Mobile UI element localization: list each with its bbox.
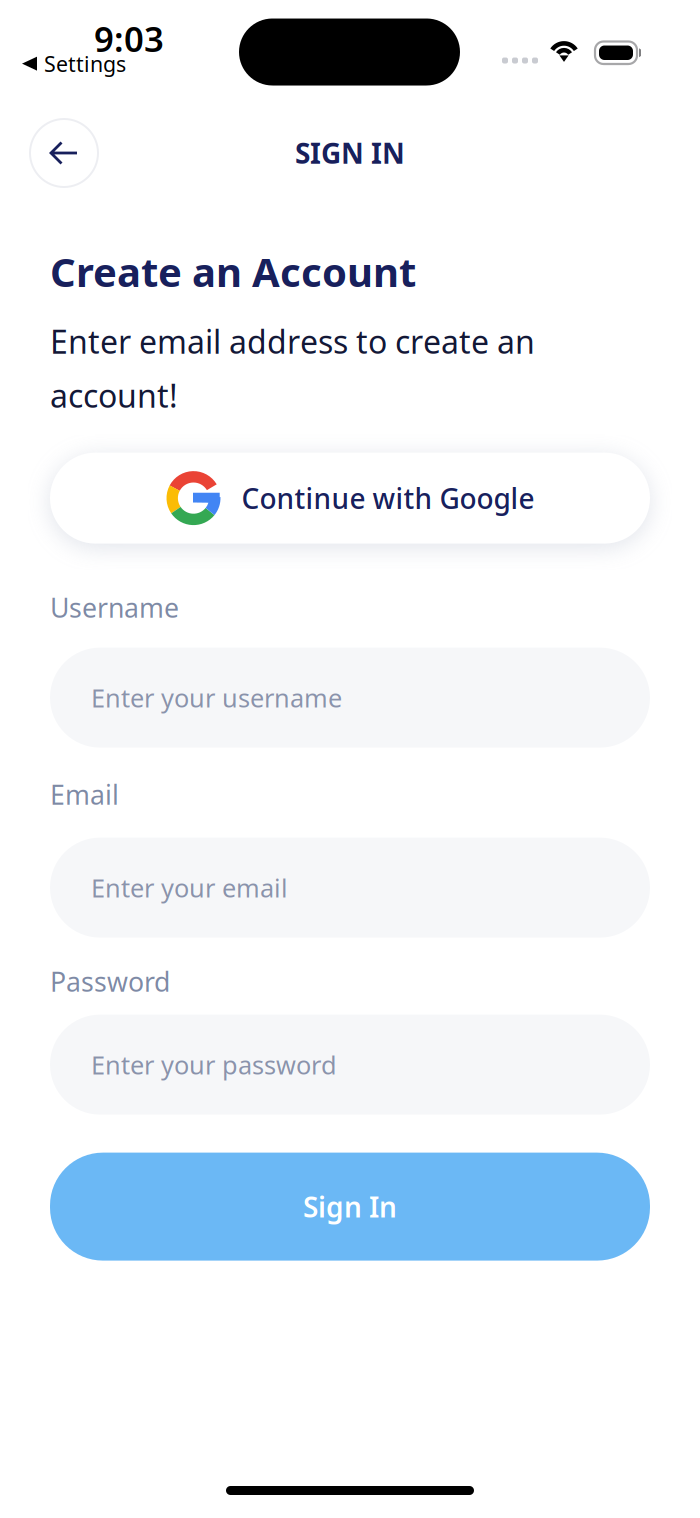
staticText: Email	[50, 777, 119, 812]
button[interactable]: Enter your password	[50, 1015, 650, 1115]
staticText: Settings	[44, 49, 126, 78]
staticText: Enter your username	[91, 681, 342, 714]
staticText: Continue with Google	[241, 479, 534, 517]
staticText: Sign In	[303, 1188, 397, 1225]
button[interactable]: Sign In	[50, 1153, 650, 1261]
staticText: Password	[50, 964, 170, 999]
staticText: SIGN IN	[295, 134, 405, 172]
staticText: Enter email address to create an	[50, 320, 535, 363]
staticText: Create an Account	[50, 245, 416, 298]
button[interactable]: Back	[30, 119, 98, 187]
staticText: Enter your password	[91, 1048, 337, 1081]
button[interactable]: Enter your email	[50, 838, 650, 938]
staticText: Username	[50, 590, 179, 625]
button[interactable]: Continue with Google	[50, 453, 650, 544]
staticText: Enter your email	[91, 871, 288, 904]
staticText: account!	[50, 374, 178, 417]
button[interactable]: Enter your username	[50, 648, 650, 748]
staticText: 9:03	[94, 15, 164, 61]
